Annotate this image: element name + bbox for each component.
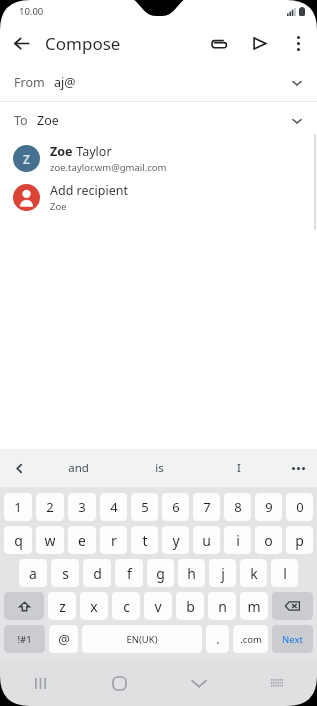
staticText: e [78,531,86,550]
staticText: d [93,564,102,583]
button[interactable]: u [193,526,220,554]
button[interactable]: w [36,526,64,554]
staticText: I [237,460,241,476]
button[interactable]: Shift [4,592,44,620]
staticText: zoe.taylor.wm@gmail.com [50,161,167,174]
staticText: i [236,531,240,550]
button[interactable]: c [112,592,140,620]
staticText: 10.00 [19,5,44,18]
staticText: Z [23,151,30,167]
button[interactable]: y [162,526,189,554]
button[interactable]: From [0,64,317,101]
button[interactable]: 3 [68,493,96,521]
staticText: 5 [141,498,149,516]
button[interactable]: Z [0,139,317,178]
button[interactable]: v [144,592,172,620]
button[interactable]: 7 [193,493,220,521]
button[interactable]: k [240,559,267,587]
staticText: t [142,531,148,550]
button[interactable]: .com [233,625,268,653]
staticText: o [264,531,273,550]
staticText: c [123,597,130,616]
button[interactable]: Add recipient [0,178,317,217]
staticText: 3 [78,498,86,516]
button[interactable]: q [4,526,32,554]
button[interactable]: i [224,526,251,554]
button[interactable]: 8 [224,493,251,521]
button[interactable]: r [100,526,127,554]
staticText: To [14,112,28,129]
button[interactable]: z [48,592,76,620]
button[interactable]: 1 [4,493,32,521]
staticText: EN(UK) [126,633,158,646]
button[interactable]: s [51,559,79,587]
staticText: Zoe [50,200,67,213]
staticText: Zoe [37,112,59,129]
button[interactable]: More options [279,24,317,62]
button[interactable]: Hide keyboard [159,660,238,706]
button[interactable]: is [119,449,199,487]
staticText: k [250,564,258,583]
button[interactable]: !#1 [4,625,45,653]
button[interactable]: j [209,559,236,587]
staticText: n [218,597,227,616]
button[interactable]: l [271,559,298,587]
button[interactable]: n [208,592,236,620]
staticText: 7 [203,498,211,516]
staticText: m [247,597,261,616]
staticText: !#1 [17,633,32,646]
staticText: Add recipient [50,182,129,199]
button[interactable]: 5 [131,493,158,521]
button[interactable]: To [0,102,317,139]
staticText: 2 [46,498,54,516]
button[interactable]: 0 [286,493,313,521]
staticText: p [295,531,304,550]
staticText: 0 [296,498,304,516]
button[interactable]: 9 [255,493,282,521]
staticText: q [14,531,23,550]
staticText: .com [240,633,262,646]
button[interactable]: b [176,592,204,620]
button[interactable]: d [83,559,111,587]
button[interactable]: Back [0,22,42,64]
staticText: 6 [172,498,180,516]
button[interactable]: f [115,559,143,587]
button[interactable]: More suggestions [279,449,317,487]
button[interactable]: Recent apps [0,660,80,706]
button[interactable]: p [286,526,313,554]
button[interactable]: EN(UK) [82,625,202,653]
staticText: 8 [234,498,242,516]
button[interactable]: and [38,449,119,487]
staticText: aj@ [54,74,76,91]
button[interactable]: Attach file [199,23,239,63]
button[interactable]: Next [272,625,313,653]
button[interactable]: a [19,559,47,587]
button[interactable]: 2 [36,493,64,521]
button[interactable]: t [131,526,158,554]
button[interactable]: e [68,526,96,554]
button[interactable]: @ [49,625,78,653]
staticText: h [187,564,196,583]
staticText: u [202,531,211,550]
staticText: is [155,460,164,476]
button[interactable]: 6 [162,493,189,521]
button[interactable]: Previous [0,449,38,487]
button[interactable]: I [199,449,279,487]
staticText: From [14,74,45,91]
button[interactable]: h [178,559,205,587]
button[interactable]: . [206,625,229,653]
button[interactable]: Send [239,23,279,63]
staticText: l [283,564,287,583]
button[interactable]: Switch keyboard [238,660,317,706]
button[interactable]: 4 [100,493,127,521]
staticText: a [29,564,37,583]
staticText: v [154,597,162,616]
button[interactable]: o [255,526,282,554]
button[interactable]: x [80,592,108,620]
button[interactable]: m [240,592,268,620]
button[interactable]: g [147,559,174,587]
staticText: 9 [265,498,273,516]
button[interactable]: Backspace [272,592,313,620]
staticText: Zoe [50,143,73,160]
button[interactable]: Home [80,660,159,706]
